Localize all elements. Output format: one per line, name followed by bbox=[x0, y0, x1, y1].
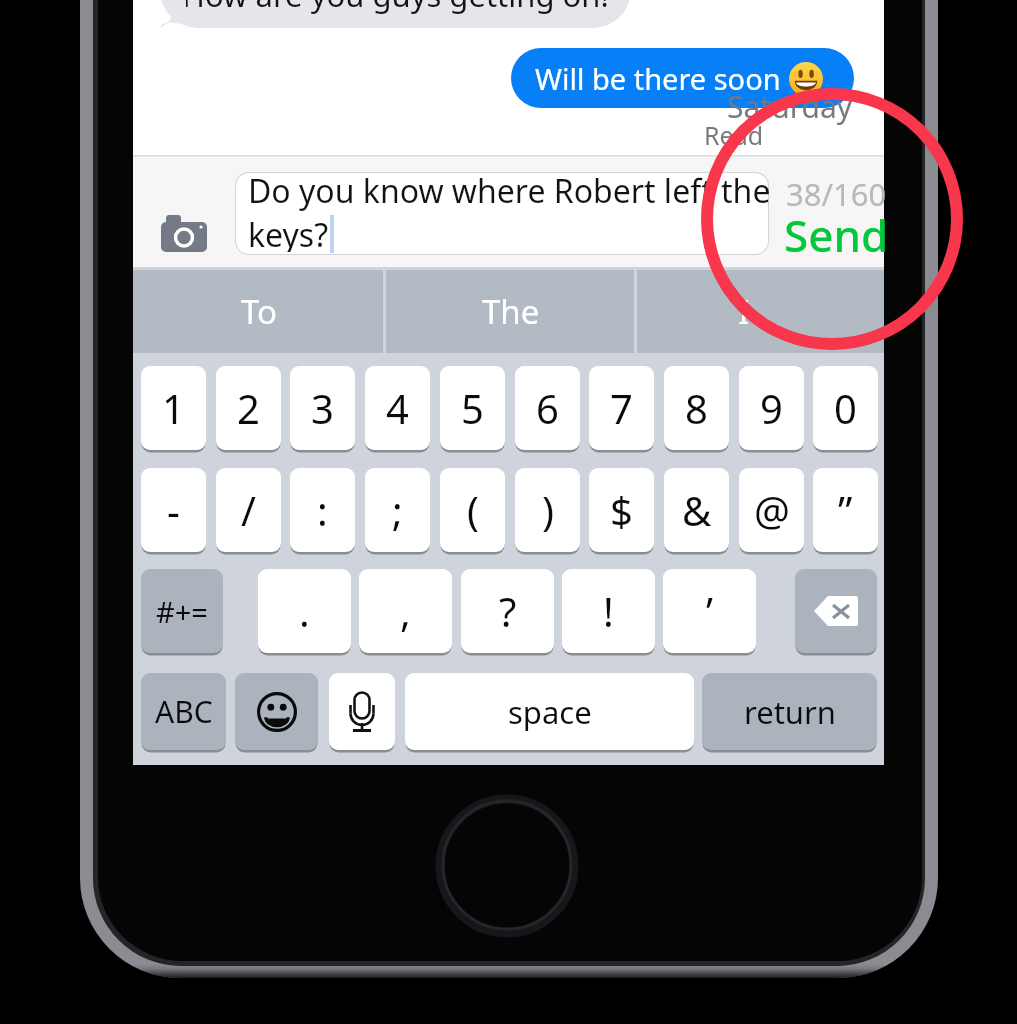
staticText: 38/160 bbox=[786, 173, 887, 215]
button[interactable]: ? bbox=[461, 569, 554, 653]
button[interactable]: I bbox=[636, 270, 852, 353]
staticText: 2 bbox=[237, 381, 260, 435]
other: Highlight around the Send button bbox=[701, 88, 963, 350]
button[interactable]: 3 bbox=[290, 366, 355, 450]
button[interactable]: 9 bbox=[739, 366, 804, 450]
button[interactable]: - bbox=[141, 468, 206, 552]
staticText: ? bbox=[499, 584, 517, 638]
button[interactable]: 2 bbox=[216, 366, 281, 450]
staticText: : bbox=[317, 483, 328, 537]
button[interactable]: 6 bbox=[515, 366, 580, 450]
staticText: 5 bbox=[461, 381, 484, 435]
button[interactable]: Dictation bbox=[329, 673, 395, 750]
button[interactable]: return bbox=[702, 673, 877, 750]
staticText: 1 bbox=[162, 381, 185, 435]
staticText: 4 bbox=[386, 381, 409, 435]
button[interactable]: space bbox=[405, 673, 694, 750]
staticText: ; bbox=[392, 483, 403, 537]
button[interactable]: ) bbox=[515, 468, 580, 552]
button[interactable]: ” bbox=[813, 468, 878, 552]
button[interactable]: ( bbox=[440, 468, 505, 552]
staticText: 6 bbox=[536, 381, 559, 435]
button[interactable]: : bbox=[290, 468, 355, 552]
staticText: Will be there soon bbox=[535, 59, 781, 98]
button[interactable]: / bbox=[216, 468, 281, 552]
button[interactable]: 0 bbox=[813, 366, 878, 450]
staticText: & bbox=[682, 483, 712, 537]
button[interactable]: #+= bbox=[141, 569, 223, 653]
staticText: Saturday bbox=[727, 86, 853, 127]
button[interactable]: ; bbox=[365, 468, 430, 552]
staticText: #+= bbox=[156, 592, 208, 631]
button[interactable]: Camera bbox=[154, 209, 214, 257]
staticText: ’ bbox=[706, 584, 713, 638]
button[interactable]: @ bbox=[739, 468, 804, 552]
button[interactable]: The bbox=[385, 270, 636, 353]
staticText: @ bbox=[754, 483, 790, 537]
button[interactable]: To bbox=[133, 270, 385, 353]
staticText: ( bbox=[467, 483, 479, 537]
staticText: space bbox=[508, 691, 592, 733]
staticText: How are you guys getting on! bbox=[182, 0, 609, 16]
button[interactable]: 38/160 bbox=[763, 159, 903, 259]
staticText: To bbox=[241, 289, 278, 334]
staticText: 3 bbox=[311, 381, 334, 435]
staticText: ABC bbox=[155, 691, 213, 732]
staticText: return bbox=[744, 691, 836, 733]
button[interactable]: Emoji keyboard bbox=[235, 673, 318, 750]
button[interactable]: . bbox=[258, 569, 351, 653]
button[interactable]: Do you know where Robert left the bbox=[235, 172, 769, 255]
button[interactable]: 1 bbox=[141, 366, 206, 450]
button[interactable]: Backspace bbox=[795, 569, 877, 653]
staticText: 7 bbox=[610, 381, 633, 435]
staticText: 0 bbox=[834, 381, 857, 435]
button[interactable]: 8 bbox=[664, 366, 729, 450]
staticText: . bbox=[299, 584, 310, 638]
staticText: ! bbox=[603, 584, 614, 638]
button[interactable]: & bbox=[664, 468, 729, 552]
staticText: 8 bbox=[685, 381, 708, 435]
staticText: , bbox=[400, 584, 411, 638]
staticText: 9 bbox=[760, 381, 783, 435]
staticText: / bbox=[241, 483, 256, 537]
staticText: The bbox=[482, 289, 540, 334]
staticText: Read bbox=[704, 118, 764, 152]
button[interactable]: 4 bbox=[365, 366, 430, 450]
button[interactable]: 5 bbox=[440, 366, 505, 450]
button[interactable]: How are you guys getting on! bbox=[160, 0, 631, 28]
staticText: Send bbox=[784, 205, 889, 265]
button[interactable]: , bbox=[359, 569, 452, 653]
button[interactable]: $ bbox=[589, 468, 654, 552]
button[interactable]: 7 bbox=[589, 366, 654, 450]
staticText: ) bbox=[542, 483, 554, 537]
staticText: I bbox=[738, 289, 750, 334]
staticText: Do you know where Robert left the bbox=[248, 172, 769, 213]
button[interactable]: ABC bbox=[141, 673, 226, 750]
staticText: keys? bbox=[248, 213, 329, 252]
staticText: $ bbox=[610, 483, 633, 537]
staticText: - bbox=[167, 483, 180, 537]
button[interactable]: ’ bbox=[663, 569, 756, 653]
button[interactable]: Will be there soon bbox=[511, 48, 854, 108]
staticText: ” bbox=[838, 483, 853, 537]
button[interactable]: ! bbox=[562, 569, 655, 653]
